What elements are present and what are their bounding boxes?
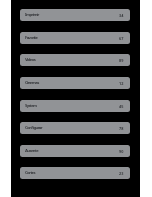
button[interactable]: Imprimir bbox=[20, 9, 130, 21]
staticText: System bbox=[25, 103, 37, 109]
button[interactable]: Cortes bbox=[20, 167, 130, 179]
button[interactable]: System bbox=[20, 100, 130, 112]
staticText: Favorite bbox=[25, 35, 38, 41]
staticText: 89 bbox=[119, 58, 124, 63]
staticText: 67 bbox=[119, 36, 124, 41]
staticText: Videos bbox=[25, 57, 36, 63]
staticText: Imprimir bbox=[25, 12, 39, 18]
button[interactable]: Videos bbox=[20, 54, 130, 66]
staticText: Configurar bbox=[25, 125, 43, 131]
staticText: 34 bbox=[119, 13, 124, 18]
staticText: Cortes bbox=[25, 170, 35, 176]
staticText: 12 bbox=[119, 81, 124, 86]
button[interactable]: Configurar bbox=[20, 122, 130, 134]
staticText: 45 bbox=[119, 104, 124, 109]
staticText: Cinemas bbox=[25, 80, 39, 86]
staticText: 78 bbox=[119, 126, 124, 131]
button[interactable]: Ausente bbox=[20, 145, 130, 157]
staticText: 23 bbox=[119, 171, 124, 176]
staticText: 90 bbox=[119, 149, 124, 154]
button[interactable]: Favorite bbox=[20, 32, 130, 44]
staticText: Ausente bbox=[25, 148, 39, 154]
button[interactable]: Cinemas bbox=[20, 77, 130, 89]
